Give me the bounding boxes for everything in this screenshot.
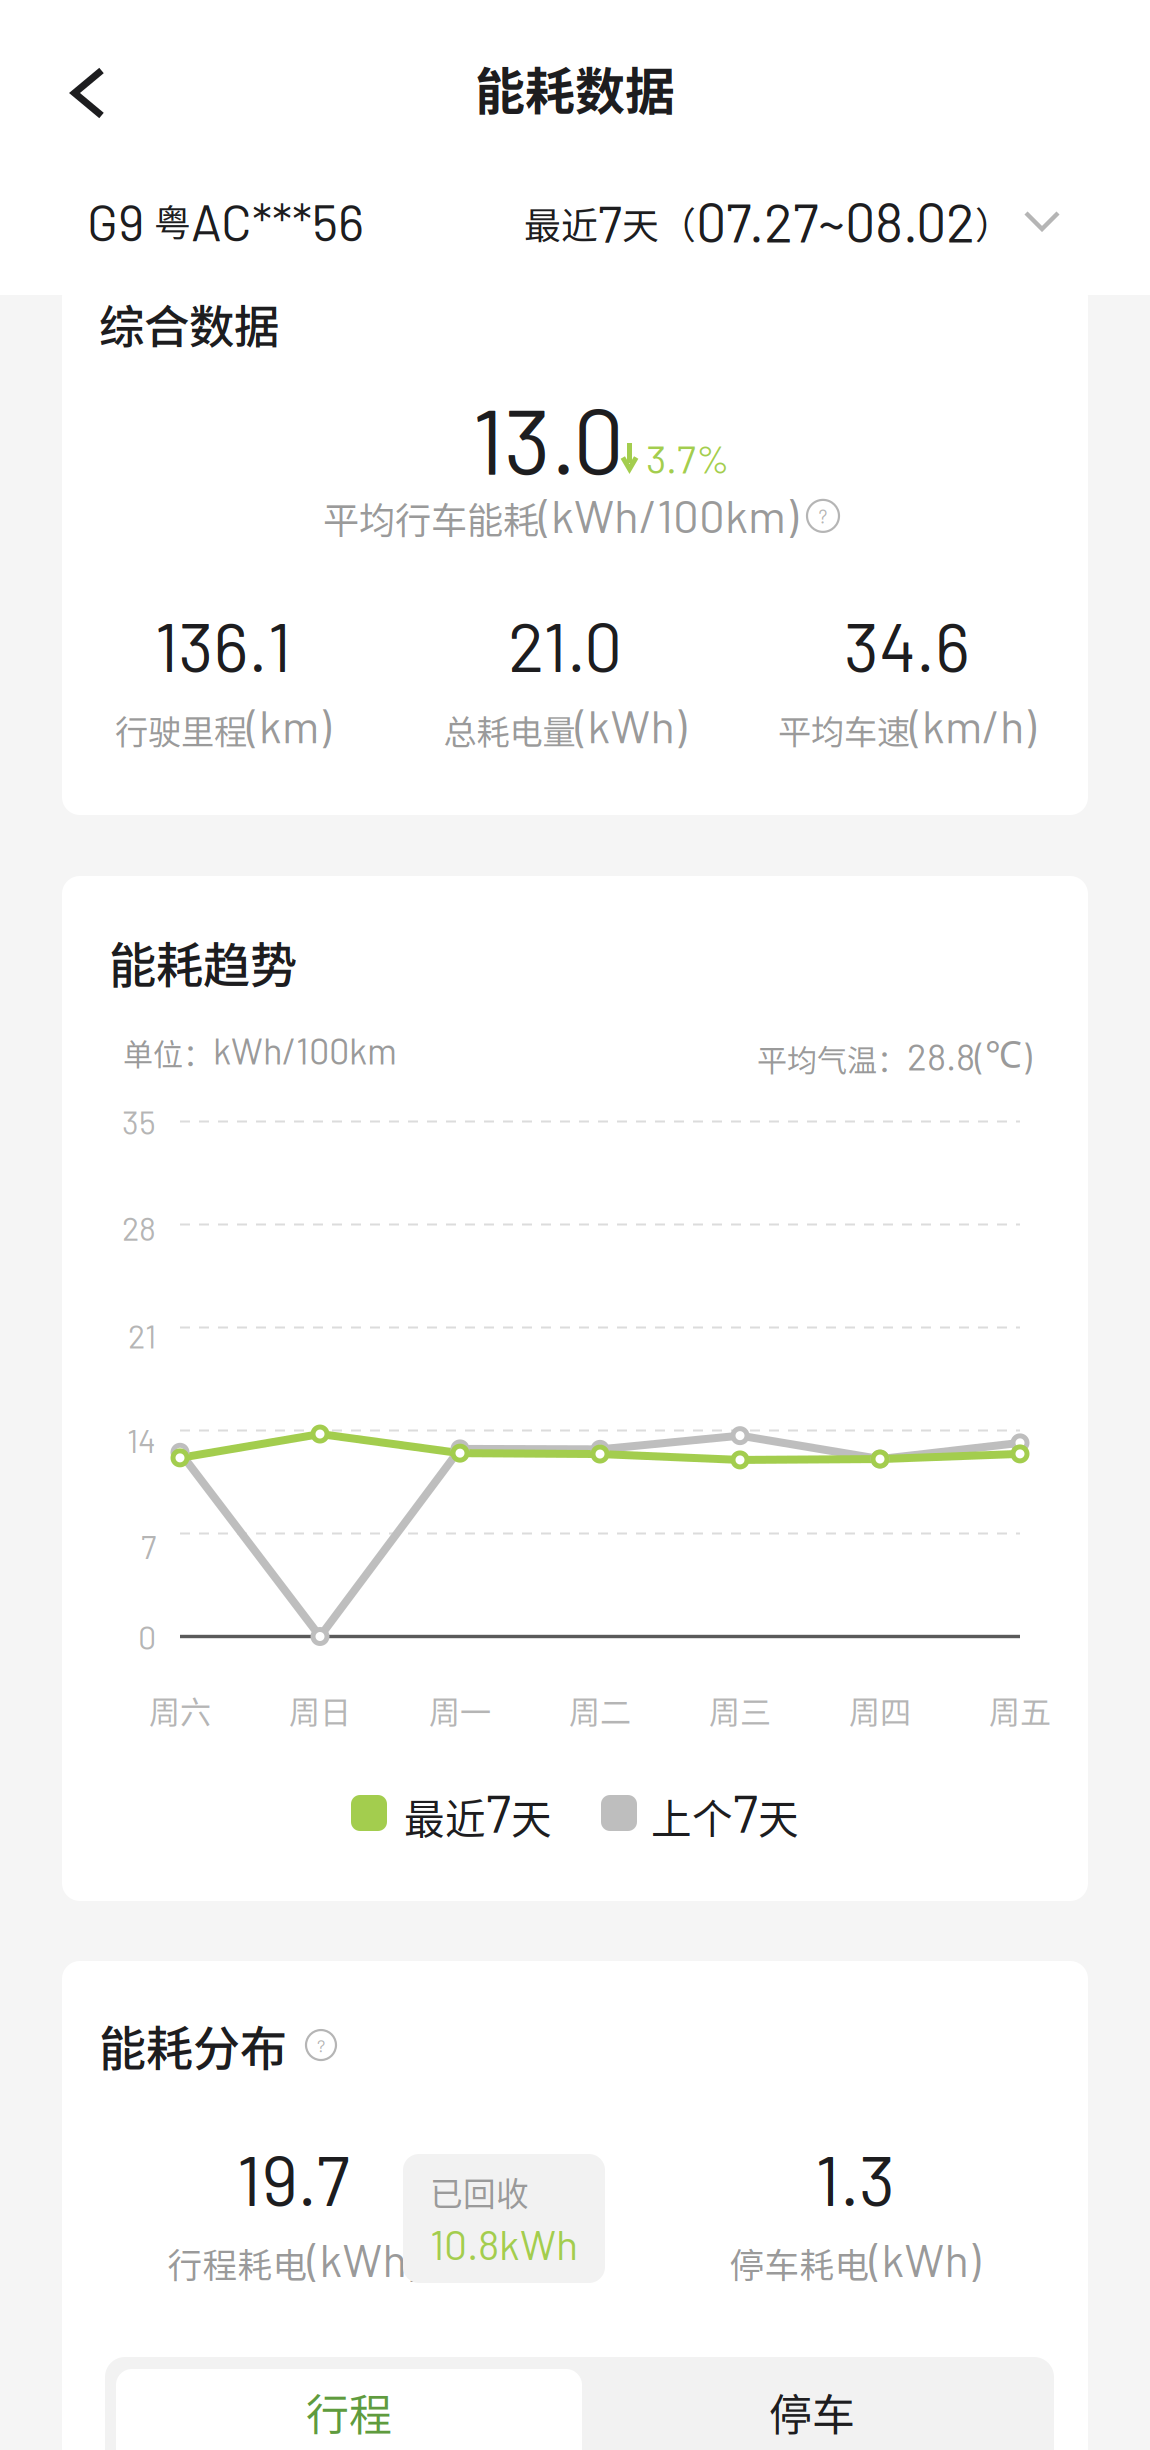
staticText: 停车耗电(kWh) xyxy=(729,2233,980,2287)
staticText: 0 xyxy=(138,1617,156,1656)
staticText: 19.7 xyxy=(236,2136,349,2220)
staticText: 13.0 xyxy=(472,384,624,493)
staticText: 21 xyxy=(128,1316,156,1355)
staticText: 平均气温：28.8(℃) xyxy=(757,1029,1032,1079)
staticText: 10.8kWh xyxy=(430,2219,578,2268)
staticText: 上个7天 xyxy=(651,1781,799,1845)
staticText: ? xyxy=(317,2034,325,2056)
staticText: 总耗电量(kWh) xyxy=(443,699,686,753)
staticText: 136.1 xyxy=(154,604,291,686)
staticText: 周一 xyxy=(429,1687,491,1732)
staticText: 单位：kWh/100km xyxy=(123,1029,397,1073)
button[interactable]: 行程 xyxy=(116,2369,582,2450)
staticText: 21.0 xyxy=(508,604,622,686)
staticText: 周五 xyxy=(989,1687,1051,1732)
staticText: 行程耗电(kWh) xyxy=(167,2233,418,2287)
staticText: 平均行车能耗(kWh/100km) xyxy=(323,488,798,544)
staticText: 平均车速(km/h) xyxy=(778,699,1036,753)
staticText: 35 xyxy=(122,1102,156,1141)
staticText: 最近7天 xyxy=(404,1781,552,1845)
staticText: 综合数据 xyxy=(99,291,279,357)
staticText: 能耗分布 xyxy=(99,2011,287,2079)
staticText: 行驶里程(km) xyxy=(115,699,331,753)
staticText: G9 粤AC***56 xyxy=(87,191,364,251)
staticText: 14 xyxy=(127,1421,156,1459)
button[interactable]: Back xyxy=(33,38,143,148)
staticText: 7 xyxy=(141,1527,156,1565)
staticText: 已回收 xyxy=(430,2168,529,2215)
staticText: 能耗趋势 xyxy=(109,928,297,996)
button[interactable]: 最近7天（07.27~08.02） xyxy=(524,176,1060,266)
staticText: 周日 xyxy=(289,1687,351,1732)
staticText: 34.6 xyxy=(844,604,970,686)
staticText: 停车 xyxy=(769,2381,855,2443)
staticText: 最近7天（07.27~08.02） xyxy=(524,189,1012,253)
staticText: 能耗数据 xyxy=(475,52,675,124)
staticText: 周六 xyxy=(149,1687,211,1732)
staticText: 行程 xyxy=(306,2381,392,2443)
staticText: 3.7% xyxy=(646,434,730,481)
staticText: 周四 xyxy=(849,1687,911,1732)
staticText: 1.3 xyxy=(815,2136,895,2220)
staticText: 周三 xyxy=(709,1687,771,1732)
staticText: 28 xyxy=(122,1208,156,1247)
button[interactable]: 停车 xyxy=(582,2383,1042,2441)
staticText: 周二 xyxy=(569,1687,631,1732)
staticText: ? xyxy=(818,504,827,527)
